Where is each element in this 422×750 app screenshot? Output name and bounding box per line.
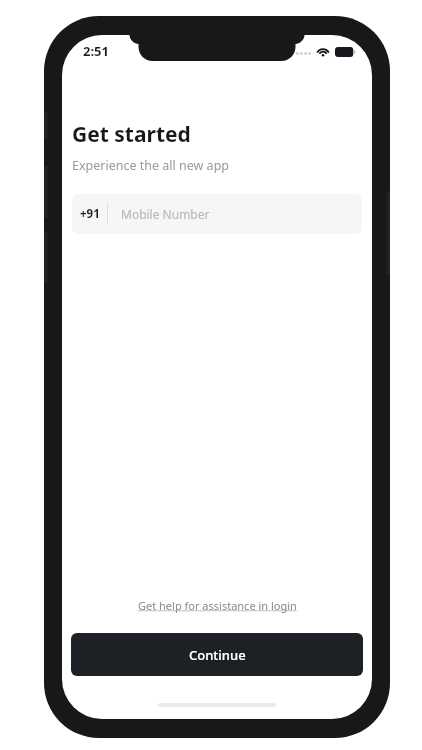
button[interactable]: Get help for assistance in login — [62, 598, 372, 613]
staticText: Mobile Number — [121, 206, 210, 222]
button[interactable]: Continue — [71, 633, 363, 676]
staticText: Experience the all new app — [72, 157, 230, 174]
staticText: Continue — [189, 646, 246, 664]
staticText: Get started — [72, 120, 191, 149]
staticText: +91 — [80, 206, 100, 222]
button[interactable]: +91 — [72, 194, 362, 234]
staticText: Get help for assistance in login — [138, 598, 297, 613]
staticText: 2:51 — [83, 42, 109, 60]
